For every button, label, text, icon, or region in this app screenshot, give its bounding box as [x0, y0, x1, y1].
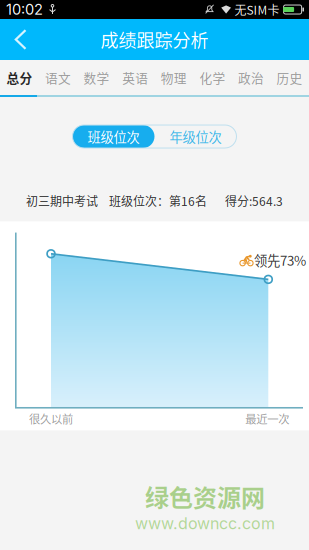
- staticText: 无SIM卡: [235, 1, 280, 18]
- button[interactable]: 总分: [0, 60, 39, 95]
- button[interactable]: 数学: [77, 60, 116, 95]
- staticText: 最近一次: [245, 410, 289, 427]
- staticText: 得分:564.3: [225, 192, 283, 209]
- staticText: 绿色资源网: [145, 479, 265, 514]
- staticText: 物理: [161, 68, 187, 87]
- button[interactable]: 英语: [116, 60, 154, 95]
- staticText: 年级位次: [169, 127, 221, 146]
- button[interactable]: Back: [0, 19, 44, 60]
- button[interactable]: 历史: [270, 60, 309, 95]
- staticText: 英语: [122, 68, 148, 87]
- staticText: 数学: [84, 68, 110, 87]
- staticText: 成绩跟踪分析: [100, 26, 208, 53]
- button[interactable]: 化学: [193, 60, 232, 95]
- button[interactable]: 政治: [232, 60, 270, 95]
- button[interactable]: 年级位次: [154, 125, 236, 148]
- staticText: 班级位次: [87, 127, 139, 146]
- staticText: www.downcc.com: [135, 514, 275, 533]
- staticText: 语文: [45, 68, 71, 87]
- staticText: 化学: [199, 68, 225, 87]
- button[interactable]: 语文: [39, 60, 77, 95]
- staticText: 领先73%: [254, 250, 306, 270]
- button[interactable]: 班级位次: [72, 125, 154, 148]
- staticText: 班级位次：第16名: [109, 192, 207, 209]
- button[interactable]: 物理: [154, 60, 193, 95]
- staticText: 历史: [277, 68, 303, 87]
- staticText: 政治: [238, 68, 264, 87]
- staticText: 10:02: [6, 1, 43, 18]
- staticText: 很久以前: [29, 410, 73, 427]
- staticText: 总分: [6, 68, 32, 87]
- staticText: 初三期中考试: [26, 192, 98, 209]
